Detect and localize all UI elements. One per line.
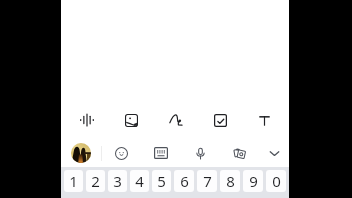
staticText: 4	[135, 171, 144, 191]
button[interactable]: Voice input	[180, 139, 220, 167]
button[interactable]: Handwriting	[154, 104, 198, 136]
button[interactable]: 3	[108, 170, 127, 192]
staticText: 2	[91, 171, 100, 191]
staticText: 0	[272, 171, 281, 191]
button[interactable]: 6	[174, 170, 194, 192]
staticText: 8	[226, 171, 235, 191]
button[interactable]: Profile	[61, 139, 101, 167]
staticText: 6	[180, 171, 189, 191]
button[interactable]: 7	[197, 170, 217, 192]
button[interactable]: Checklist	[198, 104, 242, 136]
button[interactable]: 4	[130, 170, 149, 192]
staticText: 1	[69, 171, 78, 191]
button[interactable]: 0	[266, 170, 286, 192]
button[interactable]: Insert image	[109, 104, 154, 136]
button[interactable]: 1	[64, 170, 83, 192]
button[interactable]: Keyboard	[141, 139, 180, 167]
button[interactable]: 5	[152, 170, 171, 192]
button[interactable]: Audio message	[64, 104, 109, 136]
button[interactable]: 2	[86, 170, 105, 192]
staticText: 3	[113, 171, 122, 191]
button[interactable]: Text format	[242, 104, 286, 136]
button[interactable]: Stickers	[220, 139, 260, 167]
staticText: 5	[157, 171, 166, 191]
button[interactable]: 8	[220, 170, 240, 192]
button[interactable]: 9	[243, 170, 263, 192]
button[interactable]: Collapse	[260, 139, 289, 167]
staticText: 9	[249, 171, 258, 191]
staticText: 7	[203, 171, 212, 191]
button[interactable]: Emoji	[102, 139, 141, 167]
